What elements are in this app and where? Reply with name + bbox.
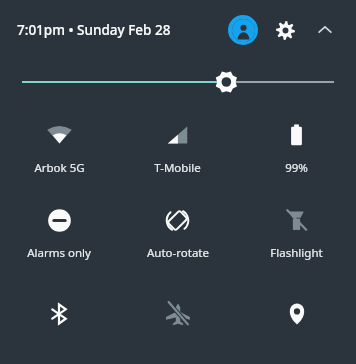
- button[interactable]: Mobile data: [118, 120, 237, 178]
- button[interactable]: Brightness: [0, 60, 356, 104]
- staticText: Auto-rotate: [147, 245, 209, 261]
- button[interactable]: Auto-rotate: [118, 205, 237, 263]
- button[interactable]: Wi-Fi: [0, 120, 118, 178]
- staticText: Arbok 5G: [34, 160, 85, 176]
- button[interactable]: Flashlight: [237, 205, 356, 263]
- staticText: Flashlight: [270, 245, 323, 261]
- staticText: Alarms only: [27, 245, 91, 261]
- staticText: 99%: [285, 160, 308, 176]
- staticText: 7:01pm • Sunday Feb 28: [17, 21, 171, 39]
- button[interactable]: Location: [237, 291, 356, 337]
- button[interactable]: Airplane mode: [118, 291, 237, 337]
- button[interactable]: Do not disturb: [0, 205, 118, 263]
- staticText: T-Mobile: [154, 160, 201, 176]
- button[interactable]: Collapse: [310, 15, 340, 45]
- button[interactable]: User account: [228, 15, 258, 45]
- button[interactable]: Battery: [237, 120, 356, 178]
- button[interactable]: Bluetooth: [0, 291, 118, 337]
- button[interactable]: Settings: [270, 15, 300, 45]
